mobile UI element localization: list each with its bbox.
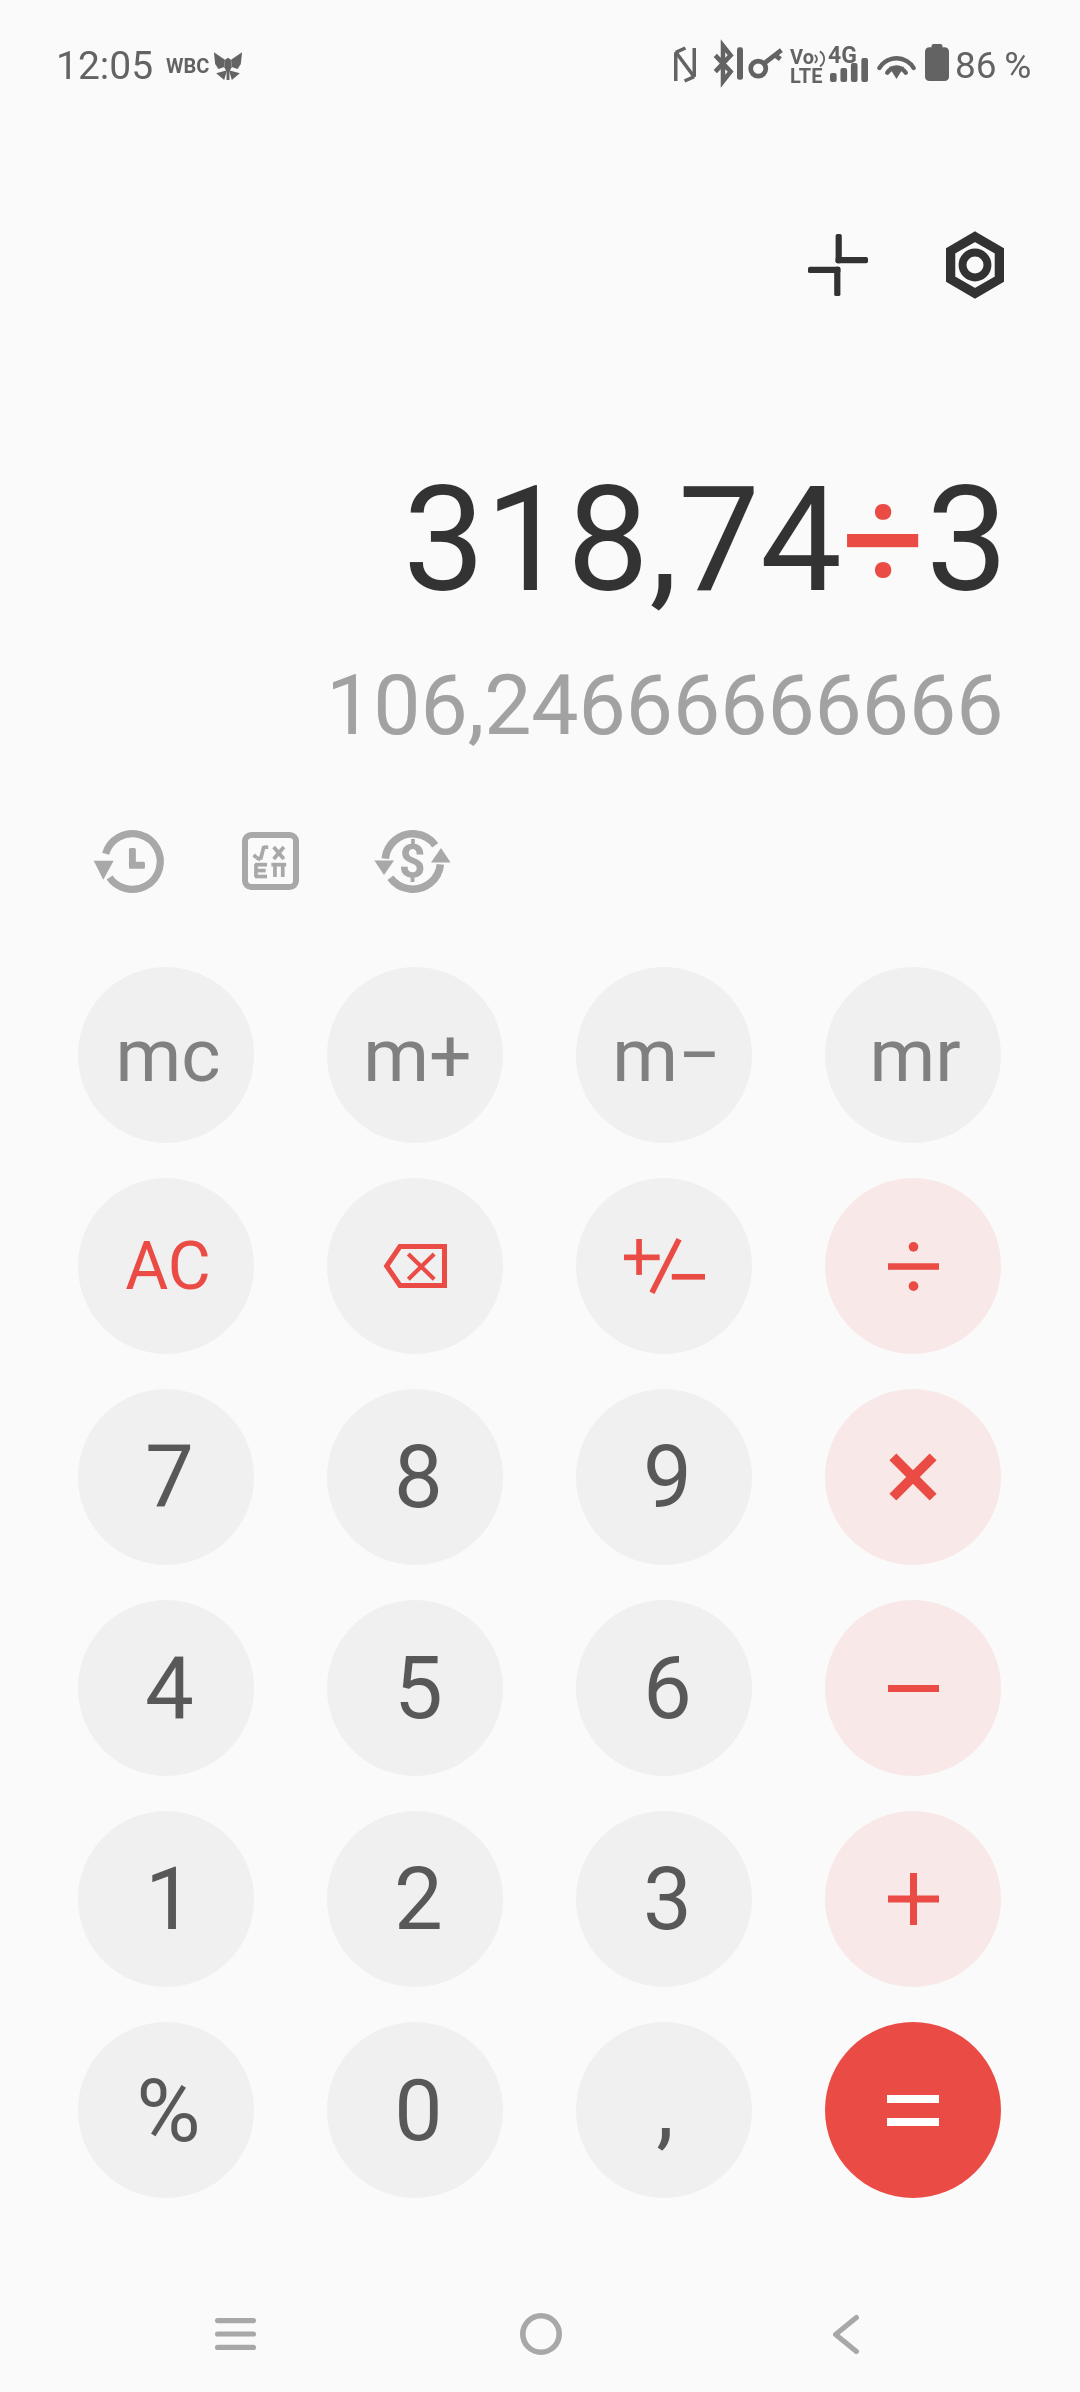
button[interactable]: 3 <box>576 1811 752 1987</box>
button[interactable]: 0 <box>327 2022 503 2198</box>
staticText: $ <box>399 834 426 888</box>
button[interactable]: History <box>68 801 188 921</box>
staticText: 9 <box>643 1426 692 1528</box>
staticText: AC <box>125 1228 211 1305</box>
staticText: Vo <box>790 45 814 68</box>
button[interactable]: Currency converter <box>352 801 472 921</box>
staticText: , <box>656 2055 674 2160</box>
button[interactable]: 5 <box>327 1600 503 1776</box>
staticText: 0 <box>394 2060 443 2161</box>
button[interactable] <box>825 1178 1001 1354</box>
button[interactable]: Home <box>481 2274 601 2392</box>
staticText: 12:05 <box>56 43 154 89</box>
button[interactable] <box>576 1178 752 1354</box>
button[interactable]: Switch layout <box>778 205 898 325</box>
button[interactable]: AC <box>78 1178 254 1354</box>
button[interactable]: , <box>576 2022 752 2198</box>
staticText: % <box>136 2059 201 2162</box>
button[interactable]: 8 <box>327 1389 503 1565</box>
button[interactable]: 1 <box>78 1811 254 1987</box>
staticText: 5 <box>394 1637 443 1739</box>
staticText: 318,74 <box>403 455 842 626</box>
staticText: 2 <box>394 1848 443 1950</box>
staticText: 6 <box>643 1637 692 1739</box>
staticText: WBC <box>166 54 210 77</box>
button[interactable] <box>825 1389 1001 1565</box>
staticText: mr <box>869 1011 961 1099</box>
staticText: 86 % <box>955 44 1032 87</box>
button[interactable] <box>327 1178 503 1354</box>
staticText: 8 <box>394 1426 443 1528</box>
staticText: m− <box>612 1011 721 1099</box>
staticText: 4 <box>145 1637 194 1739</box>
button[interactable]: 6 <box>576 1600 752 1776</box>
button[interactable]: m− <box>576 967 752 1143</box>
button[interactable]: Scientific calculator <box>210 801 330 921</box>
button[interactable]: mr <box>825 967 1001 1143</box>
staticText: mc <box>115 1011 221 1099</box>
button[interactable] <box>825 1811 1001 1987</box>
button[interactable]: 4 <box>78 1600 254 1776</box>
staticText: m+ <box>363 1011 472 1099</box>
staticText: 3 <box>926 455 1009 626</box>
button[interactable] <box>825 2022 1001 2198</box>
staticText: 7 <box>145 1426 194 1528</box>
button[interactable] <box>825 1600 1001 1776</box>
staticText: ÷ <box>842 455 926 626</box>
staticText: 3 <box>643 1848 692 1950</box>
button[interactable]: 9 <box>576 1389 752 1565</box>
button[interactable]: m+ <box>327 967 503 1143</box>
staticText: 4G <box>828 42 857 69</box>
button[interactable]: 7 <box>78 1389 254 1565</box>
staticText: LTE <box>790 64 823 87</box>
button[interactable]: Back <box>786 2274 906 2392</box>
button[interactable]: Recent apps <box>175 2274 295 2392</box>
button[interactable]: mc <box>78 967 254 1143</box>
button[interactable]: 2 <box>327 1811 503 1987</box>
button[interactable]: % <box>78 2022 254 2198</box>
staticText: 1 <box>145 1848 194 1950</box>
button[interactable]: Settings <box>915 205 1035 325</box>
staticText: 106,24666666666 <box>326 656 1004 754</box>
